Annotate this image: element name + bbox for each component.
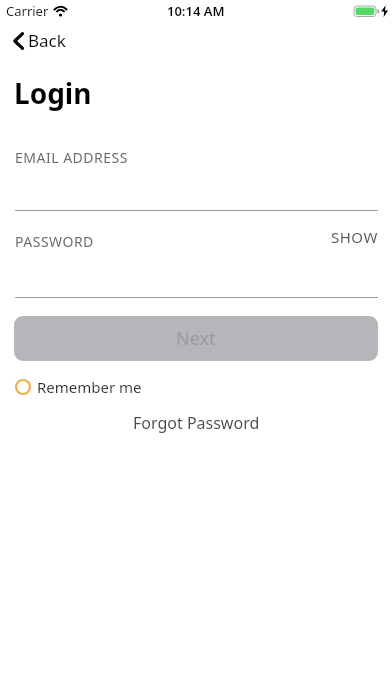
- staticText: EMAIL ADDRESS: [15, 148, 128, 167]
- staticText: Login: [14, 74, 92, 112]
- staticText: Carrier: [6, 2, 49, 20]
- button[interactable]: SHOW: [331, 227, 378, 247]
- button[interactable]: Next: [14, 316, 378, 361]
- staticText: Back: [28, 29, 66, 52]
- staticText: PASSWORD: [15, 232, 94, 251]
- staticText: Next: [176, 326, 216, 351]
- staticText: SHOW: [331, 227, 378, 247]
- button[interactable]: Forgot Password: [133, 412, 260, 434]
- staticText: Remember me: [37, 377, 142, 397]
- staticText: 10:14 AM: [167, 2, 225, 20]
- button[interactable]: Back: [8, 25, 70, 56]
- staticText: Forgot Password: [133, 412, 260, 434]
- button[interactable]: Remember me: [14, 376, 143, 398]
